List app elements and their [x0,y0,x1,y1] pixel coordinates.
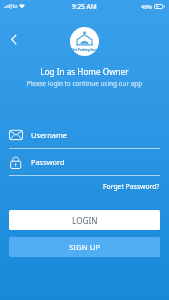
button[interactable]: Forget Password? [103,182,160,191]
button[interactable]: Username [9,129,160,148]
staticText: SIGN UP [69,242,101,253]
staticText: Password [31,157,65,167]
button[interactable]: Password [9,156,160,175]
staticText: 9:25 AM [72,2,97,11]
staticText: Please login to continue using our app [0,79,169,88]
button[interactable]: Back [4,29,24,49]
staticText: Username [31,130,67,140]
button[interactable]: SIGN UP [9,237,160,257]
button[interactable]: LOGIN [9,210,160,230]
staticText: Jio [11,2,18,10]
staticText: LOGIN [72,215,98,226]
staticText: Forget Password? [103,182,160,191]
staticText: Get Parking Easy [72,48,98,52]
staticText: Log In as Home Owner [0,66,169,77]
staticText: 46% [141,3,152,10]
